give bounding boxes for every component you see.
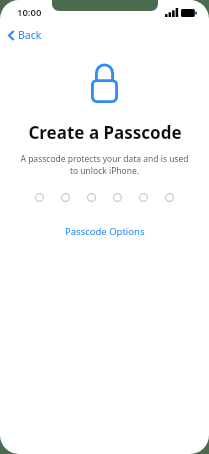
- staticText: 10:00: [17, 6, 42, 19]
- staticText: Back: [18, 28, 42, 42]
- staticText: Create a Passcode: [28, 121, 182, 144]
- staticText: Passcode Options: [65, 225, 145, 238]
- button[interactable]: Passcode Options: [57, 222, 153, 241]
- button[interactable]: Back: [5, 26, 45, 44]
- staticText: A passcode protects your data and is use…: [20, 153, 189, 177]
